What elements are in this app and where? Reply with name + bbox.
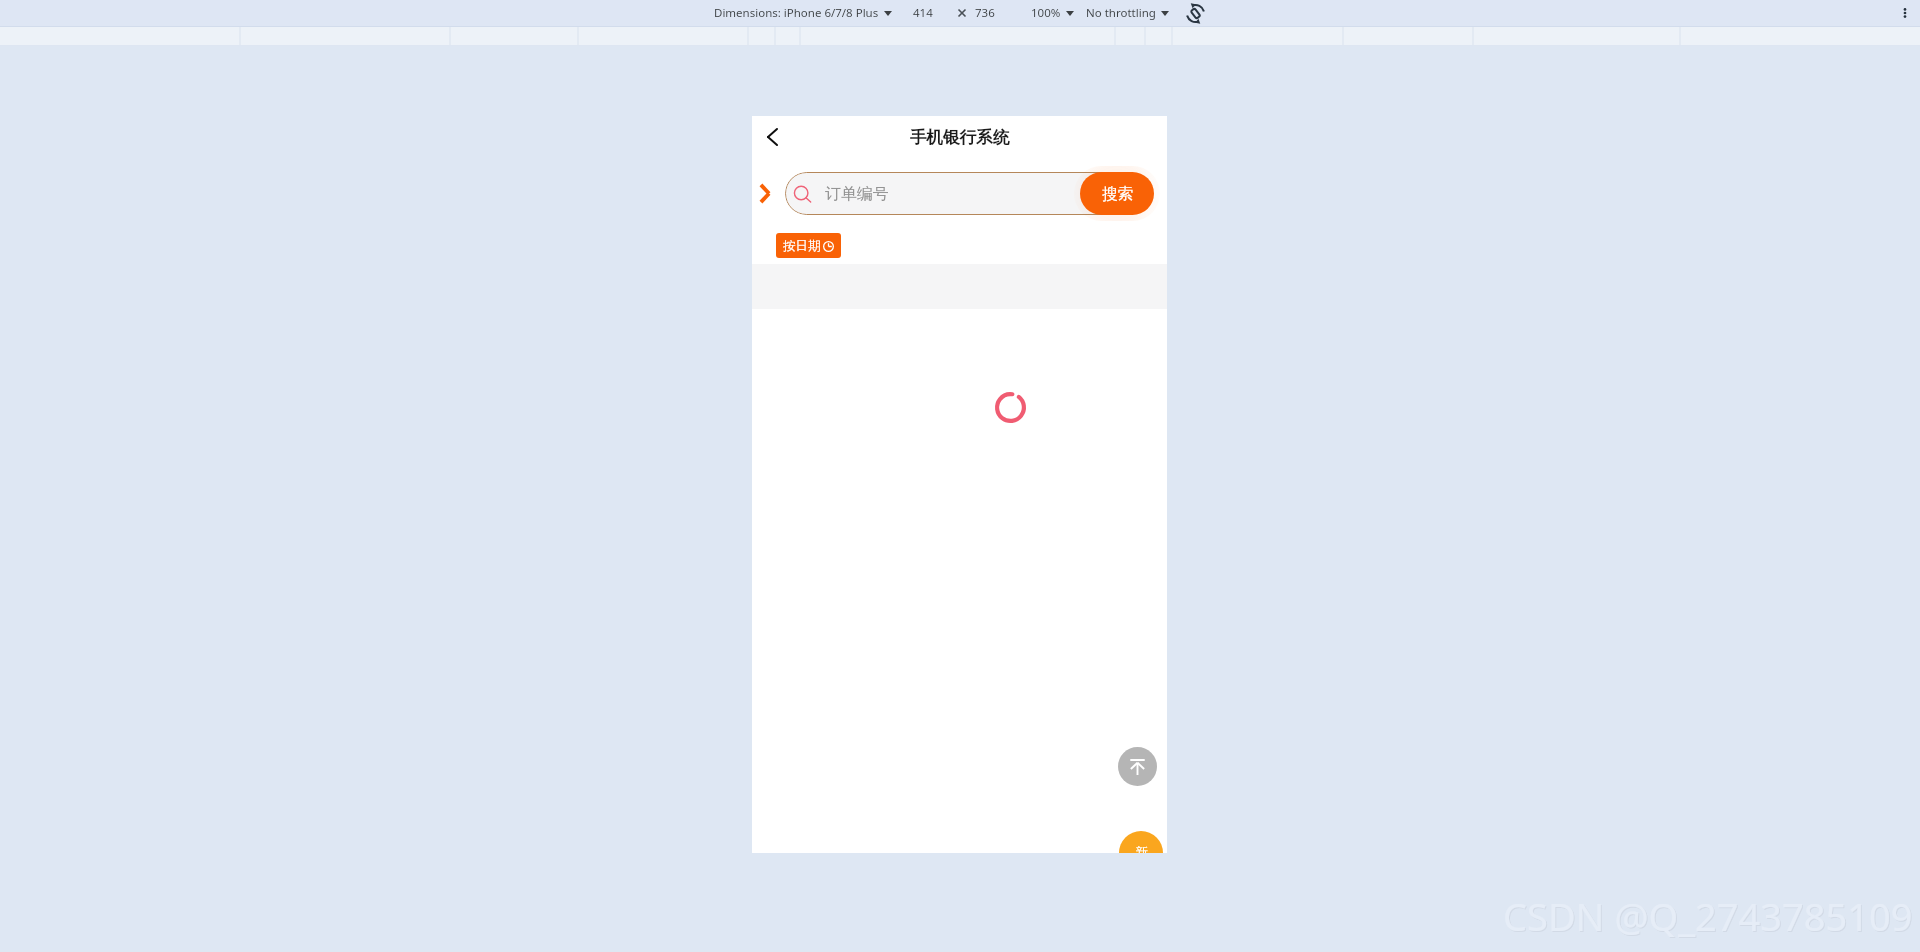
staticText: 搜索 <box>1102 184 1133 204</box>
staticText: 414 <box>913 5 933 21</box>
staticText: CSDN @Q_2743785109 <box>1503 890 1913 942</box>
button[interactable]: Back to top <box>1118 747 1157 786</box>
button[interactable]: 按日期 <box>776 233 841 258</box>
button[interactable]: Back <box>767 128 778 146</box>
button[interactable]: Dimensions: iPhone 6/7/8 Plus <box>714 5 892 21</box>
staticText: 736 <box>975 5 995 21</box>
button[interactable]: 100% <box>1031 5 1074 21</box>
button[interactable]: 订单编号 <box>785 172 1145 215</box>
staticText: 新增 <box>1134 844 1149 853</box>
staticText: No throttling <box>1086 5 1156 21</box>
button[interactable]: More options <box>1895 3 1915 23</box>
staticText: 手机银行系统 <box>752 127 1167 148</box>
button[interactable]: New order <box>1119 831 1163 853</box>
staticText: 订单编号 <box>825 184 889 204</box>
button[interactable]: No throttling <box>1086 5 1169 21</box>
staticText: Dimensions: iPhone 6/7/8 Plus <box>714 5 879 21</box>
staticText: CSDN @Q_2743785109 <box>1504 891 1914 943</box>
staticText: 按日期 <box>783 238 821 254</box>
staticText: 100% <box>1031 5 1061 21</box>
button[interactable]: Rotate device <box>1183 1 1207 25</box>
button[interactable]: 搜索 <box>1080 172 1154 215</box>
